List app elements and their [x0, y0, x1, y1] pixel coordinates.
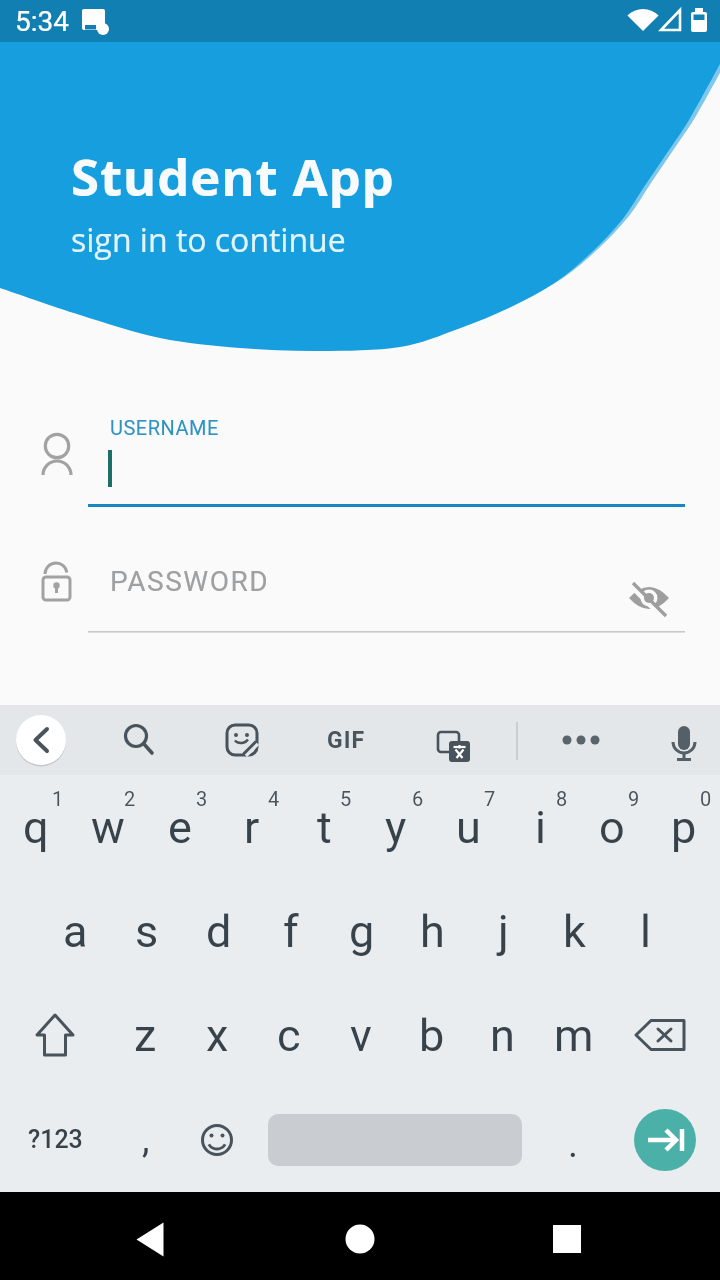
- button[interactable]: .: [538, 1087, 609, 1192]
- button[interactable]: o: [576, 775, 648, 879]
- staticText: x: [206, 1009, 229, 1062]
- button[interactable]: GIF: [320, 719, 372, 761]
- button[interactable]: v: [325, 983, 396, 1087]
- button[interactable]: y: [360, 775, 432, 879]
- button[interactable]: z: [109, 983, 181, 1087]
- staticText: t: [317, 801, 332, 854]
- button[interactable]: [219, 712, 265, 768]
- staticText: d: [206, 905, 232, 958]
- staticText: r: [244, 801, 260, 854]
- button[interactable]: [252, 1087, 538, 1192]
- button[interactable]: s: [111, 879, 183, 983]
- button[interactable]: h: [397, 879, 468, 983]
- staticText: 5:34: [15, 5, 69, 38]
- button[interactable]: j: [468, 879, 539, 983]
- staticText: w: [91, 801, 125, 854]
- button[interactable]: [522, 1209, 612, 1269]
- button[interactable]: [105, 1209, 195, 1269]
- button[interactable]: c: [253, 983, 325, 1087]
- staticText: 1: [52, 787, 64, 810]
- button[interactable]: [113, 712, 159, 768]
- staticText: ?123: [28, 1125, 83, 1154]
- button[interactable]: ,: [110, 1087, 181, 1192]
- button[interactable]: [315, 1209, 405, 1269]
- staticText: u: [456, 801, 481, 854]
- staticText: GIF: [327, 727, 365, 754]
- button[interactable]: f: [255, 879, 326, 983]
- staticText: c: [277, 1009, 301, 1062]
- button[interactable]: k: [539, 879, 610, 983]
- staticText: z: [134, 1009, 157, 1062]
- staticText: sign in to continue: [71, 218, 346, 262]
- button[interactable]: l: [610, 879, 681, 983]
- staticText: n: [490, 1009, 515, 1062]
- staticText: 2: [124, 787, 136, 810]
- button[interactable]: p: [648, 775, 720, 879]
- button[interactable]: USERNAME: [30, 405, 690, 510]
- staticText: 6: [412, 787, 424, 810]
- button[interactable]: i: [504, 775, 576, 879]
- button[interactable]: b: [396, 983, 467, 1087]
- button[interactable]: g: [326, 879, 397, 983]
- button[interactable]: n: [467, 983, 538, 1087]
- button[interactable]: u: [432, 775, 504, 879]
- staticText: p: [671, 801, 697, 854]
- staticText: o: [599, 801, 625, 854]
- button[interactable]: e: [144, 775, 216, 879]
- button[interactable]: m: [538, 983, 609, 1087]
- staticText: m: [554, 1009, 594, 1062]
- staticText: 8: [556, 787, 568, 810]
- staticText: USERNAME: [110, 416, 219, 439]
- button[interactable]: PASSWORD: [30, 545, 690, 635]
- staticText: g: [349, 905, 375, 958]
- button[interactable]: d: [183, 879, 255, 983]
- staticText: i: [535, 801, 546, 854]
- staticText: k: [563, 905, 586, 958]
- staticText: e: [168, 801, 192, 854]
- staticText: 4: [268, 787, 280, 810]
- button[interactable]: a: [39, 879, 111, 983]
- button[interactable]: x: [181, 983, 253, 1087]
- button[interactable]: [0, 983, 109, 1087]
- staticText: j: [498, 905, 509, 958]
- button[interactable]: [430, 712, 478, 768]
- button[interactable]: [660, 710, 708, 770]
- staticText: q: [23, 801, 49, 854]
- staticText: l: [640, 905, 651, 958]
- button[interactable]: [620, 575, 680, 625]
- staticText: 0: [700, 787, 712, 810]
- staticText: a: [63, 905, 88, 958]
- staticText: PASSWORD: [110, 565, 270, 598]
- staticText: v: [350, 1009, 372, 1062]
- staticText: .: [568, 1122, 579, 1167]
- button[interactable]: [181, 1087, 252, 1192]
- staticText: Student App: [71, 141, 395, 210]
- staticText: 5: [340, 787, 352, 810]
- staticText: h: [420, 905, 445, 958]
- staticText: b: [419, 1009, 445, 1062]
- button[interactable]: t: [288, 775, 360, 879]
- staticText: 9: [628, 787, 640, 810]
- button[interactable]: w: [72, 775, 144, 879]
- button[interactable]: [609, 1087, 720, 1192]
- button[interactable]: [609, 983, 720, 1087]
- staticText: y: [385, 801, 407, 854]
- staticText: s: [135, 905, 159, 958]
- button[interactable]: [16, 715, 66, 765]
- staticText: 3: [196, 787, 208, 810]
- button[interactable]: r: [216, 775, 288, 879]
- staticText: f: [283, 905, 299, 958]
- button[interactable]: q: [0, 775, 72, 879]
- button[interactable]: ?123: [0, 1087, 110, 1192]
- button[interactable]: [556, 715, 608, 765]
- staticText: ,: [142, 1117, 150, 1162]
- staticText: 7: [484, 787, 496, 810]
